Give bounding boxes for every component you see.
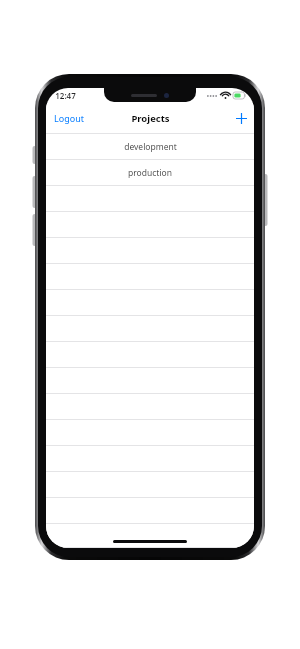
button[interactable] [46, 316, 254, 342]
button[interactable]: production [46, 160, 254, 186]
button[interactable] [46, 238, 254, 264]
staticText: 12:47 [55, 90, 76, 101]
button[interactable] [46, 498, 254, 524]
button[interactable]: development [46, 134, 254, 160]
button[interactable] [46, 446, 254, 472]
staticText: development [124, 141, 177, 153]
button[interactable] [46, 420, 254, 446]
button[interactable] [46, 212, 254, 238]
button[interactable]: Logout [46, 107, 92, 129]
staticText: Logout [54, 112, 84, 124]
button[interactable]: Add project [229, 108, 254, 129]
button[interactable] [46, 394, 254, 420]
button[interactable] [46, 186, 254, 212]
button[interactable] [46, 342, 254, 368]
button[interactable] [46, 290, 254, 316]
staticText: Projects [131, 112, 170, 125]
button[interactable] [46, 472, 254, 498]
button[interactable] [46, 368, 254, 394]
staticText: production [128, 167, 172, 179]
button[interactable] [46, 264, 254, 290]
button[interactable] [46, 524, 254, 548]
